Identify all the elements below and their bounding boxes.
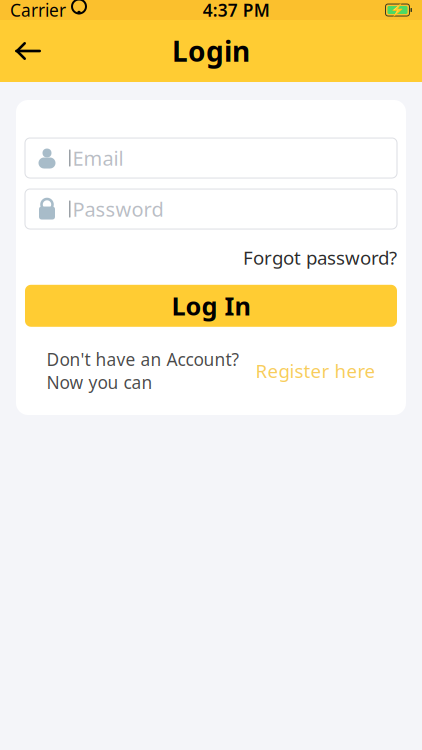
staticText: Login: [172, 32, 250, 70]
staticText: Register here: [255, 358, 375, 383]
button[interactable]: Forgot password?: [243, 245, 397, 270]
staticText: ⚡: [390, 3, 405, 17]
staticText: Don't have an Account? Now you can: [46, 348, 239, 394]
staticText: Password: [72, 196, 163, 222]
staticText: Forgot password?: [243, 245, 397, 270]
staticText: Carrier: [10, 0, 66, 21]
staticText: 4:37 PM: [203, 0, 270, 21]
button[interactable]: Register here: [239, 358, 375, 383]
staticText: Log In: [171, 289, 250, 323]
button[interactable]: Log In: [25, 285, 397, 327]
button[interactable]: Back: [6, 29, 50, 73]
staticText: Email: [72, 145, 123, 171]
